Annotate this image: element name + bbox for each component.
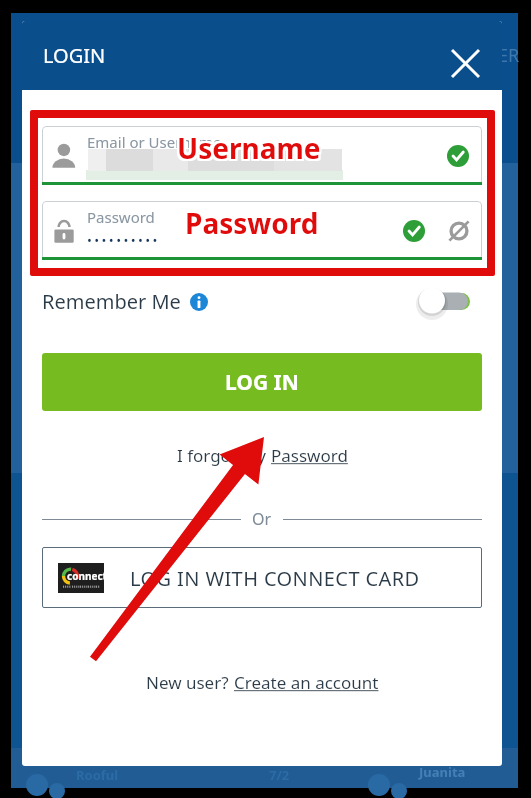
button[interactable]: Password	[42, 201, 482, 260]
staticText: Or	[252, 508, 272, 530]
button[interactable]: Show password	[445, 201, 473, 260]
staticText: LOGIN	[43, 42, 106, 69]
staticText: Username	[179, 129, 323, 167]
staticText: Username	[179, 127, 323, 165]
staticText: Rooful	[76, 766, 119, 784]
staticText: Password	[183, 204, 317, 242]
staticText: ••••••••••	[87, 231, 160, 249]
staticText: Remember Me	[42, 288, 181, 315]
staticText: Juanita	[419, 763, 466, 781]
button[interactable]: Email or Username	[42, 126, 482, 185]
button[interactable]: LOG IN	[42, 353, 482, 411]
staticText: Username	[175, 127, 319, 165]
button[interactable]: I forgot my	[177, 444, 348, 467]
staticText: I forgot my	[177, 444, 271, 467]
staticText: Password	[87, 207, 155, 227]
staticText: Password	[185, 206, 319, 244]
staticText: Password	[185, 204, 319, 242]
staticText: Password	[271, 444, 348, 467]
staticText: LOG IN	[225, 368, 299, 397]
button[interactable]: Remember Me	[42, 288, 208, 315]
staticText: Username	[175, 131, 319, 169]
staticText: Email or Username	[87, 132, 222, 152]
staticText: ER	[498, 43, 520, 68]
staticText: LOG IN WITH CONNECT CARD	[130, 565, 420, 592]
button[interactable]: Remember me toggle	[410, 282, 476, 322]
staticText: Password	[187, 202, 321, 240]
staticText: Password	[185, 202, 319, 240]
staticText: Username	[177, 129, 321, 167]
button[interactable]: connect	[42, 547, 482, 608]
staticText: Password	[183, 206, 317, 244]
staticText: Username	[179, 131, 323, 169]
staticText: Username	[177, 127, 321, 165]
staticText: Username	[175, 129, 319, 167]
staticText: Password	[183, 202, 317, 240]
staticText: Create an account	[234, 671, 379, 694]
staticText: 7/2	[269, 766, 290, 784]
staticText: New user?	[146, 671, 234, 694]
staticText: Password	[187, 206, 321, 244]
staticText: Username	[177, 131, 321, 169]
staticText: Password	[187, 204, 321, 242]
staticText: connect	[67, 569, 107, 583]
button[interactable]: New user?	[146, 671, 379, 694]
button[interactable]: Close	[445, 43, 485, 83]
